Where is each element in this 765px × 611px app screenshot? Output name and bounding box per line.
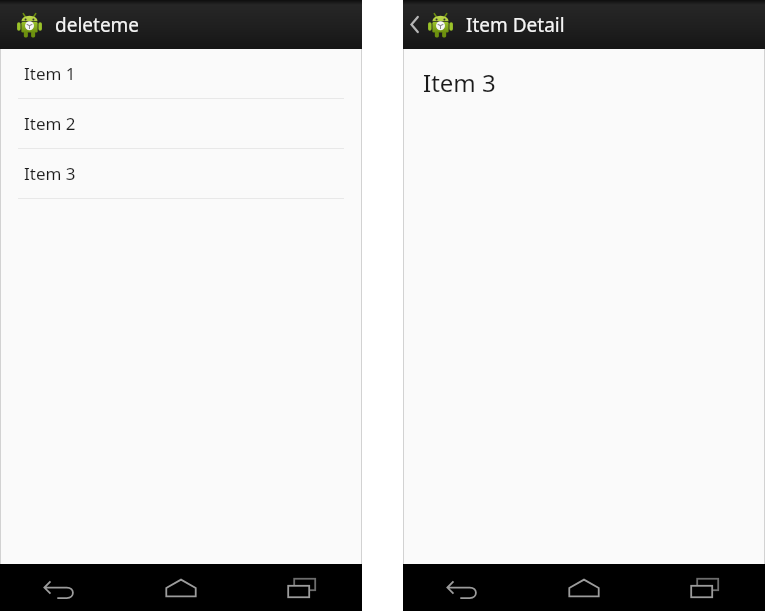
- button[interactable]: Home: [120, 564, 241, 611]
- button[interactable]: Item 3: [0, 149, 362, 199]
- button[interactable]: Item 1: [0, 49, 362, 99]
- button[interactable]: Item 2: [0, 99, 362, 149]
- button[interactable]: Navigate up: [403, 0, 425, 49]
- button[interactable]: App icon: [14, 10, 44, 40]
- staticText: deleteme: [55, 12, 140, 38]
- button[interactable]: Home: [523, 564, 644, 611]
- staticText: Item Detail: [466, 12, 565, 38]
- button[interactable]: Back: [0, 564, 120, 611]
- button[interactable]: Back: [403, 564, 523, 611]
- staticText: Item 1: [24, 62, 76, 85]
- staticText: Item 3: [423, 66, 496, 99]
- button[interactable]: App icon: [425, 10, 455, 40]
- button[interactable]: Recent apps: [241, 564, 362, 611]
- staticText: Item 3: [24, 162, 76, 185]
- staticText: Item 2: [24, 112, 76, 135]
- button[interactable]: Recent apps: [644, 564, 765, 611]
